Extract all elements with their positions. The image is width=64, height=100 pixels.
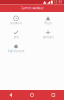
button[interactable]: Back [0, 90, 21, 100]
button[interactable]: Exercises [32, 27, 64, 41]
staticText: Reps [44, 21, 51, 25]
button[interactable]: Kcal burned [0, 41, 32, 55]
staticText: Current workout [20, 6, 43, 10]
button[interactable]: Recents [43, 90, 64, 100]
staticText: 12:30 [53, 0, 62, 4]
button[interactable]: Duration [0, 13, 32, 27]
button[interactable]: Reps [32, 13, 64, 27]
button[interactable]: Home [21, 90, 43, 100]
staticText: Exercises [42, 35, 53, 39]
staticText: Duration [10, 21, 22, 25]
button[interactable]: Sets [0, 27, 32, 41]
staticText: Sets [13, 35, 18, 39]
staticText: Kcal burned [7, 49, 24, 53]
